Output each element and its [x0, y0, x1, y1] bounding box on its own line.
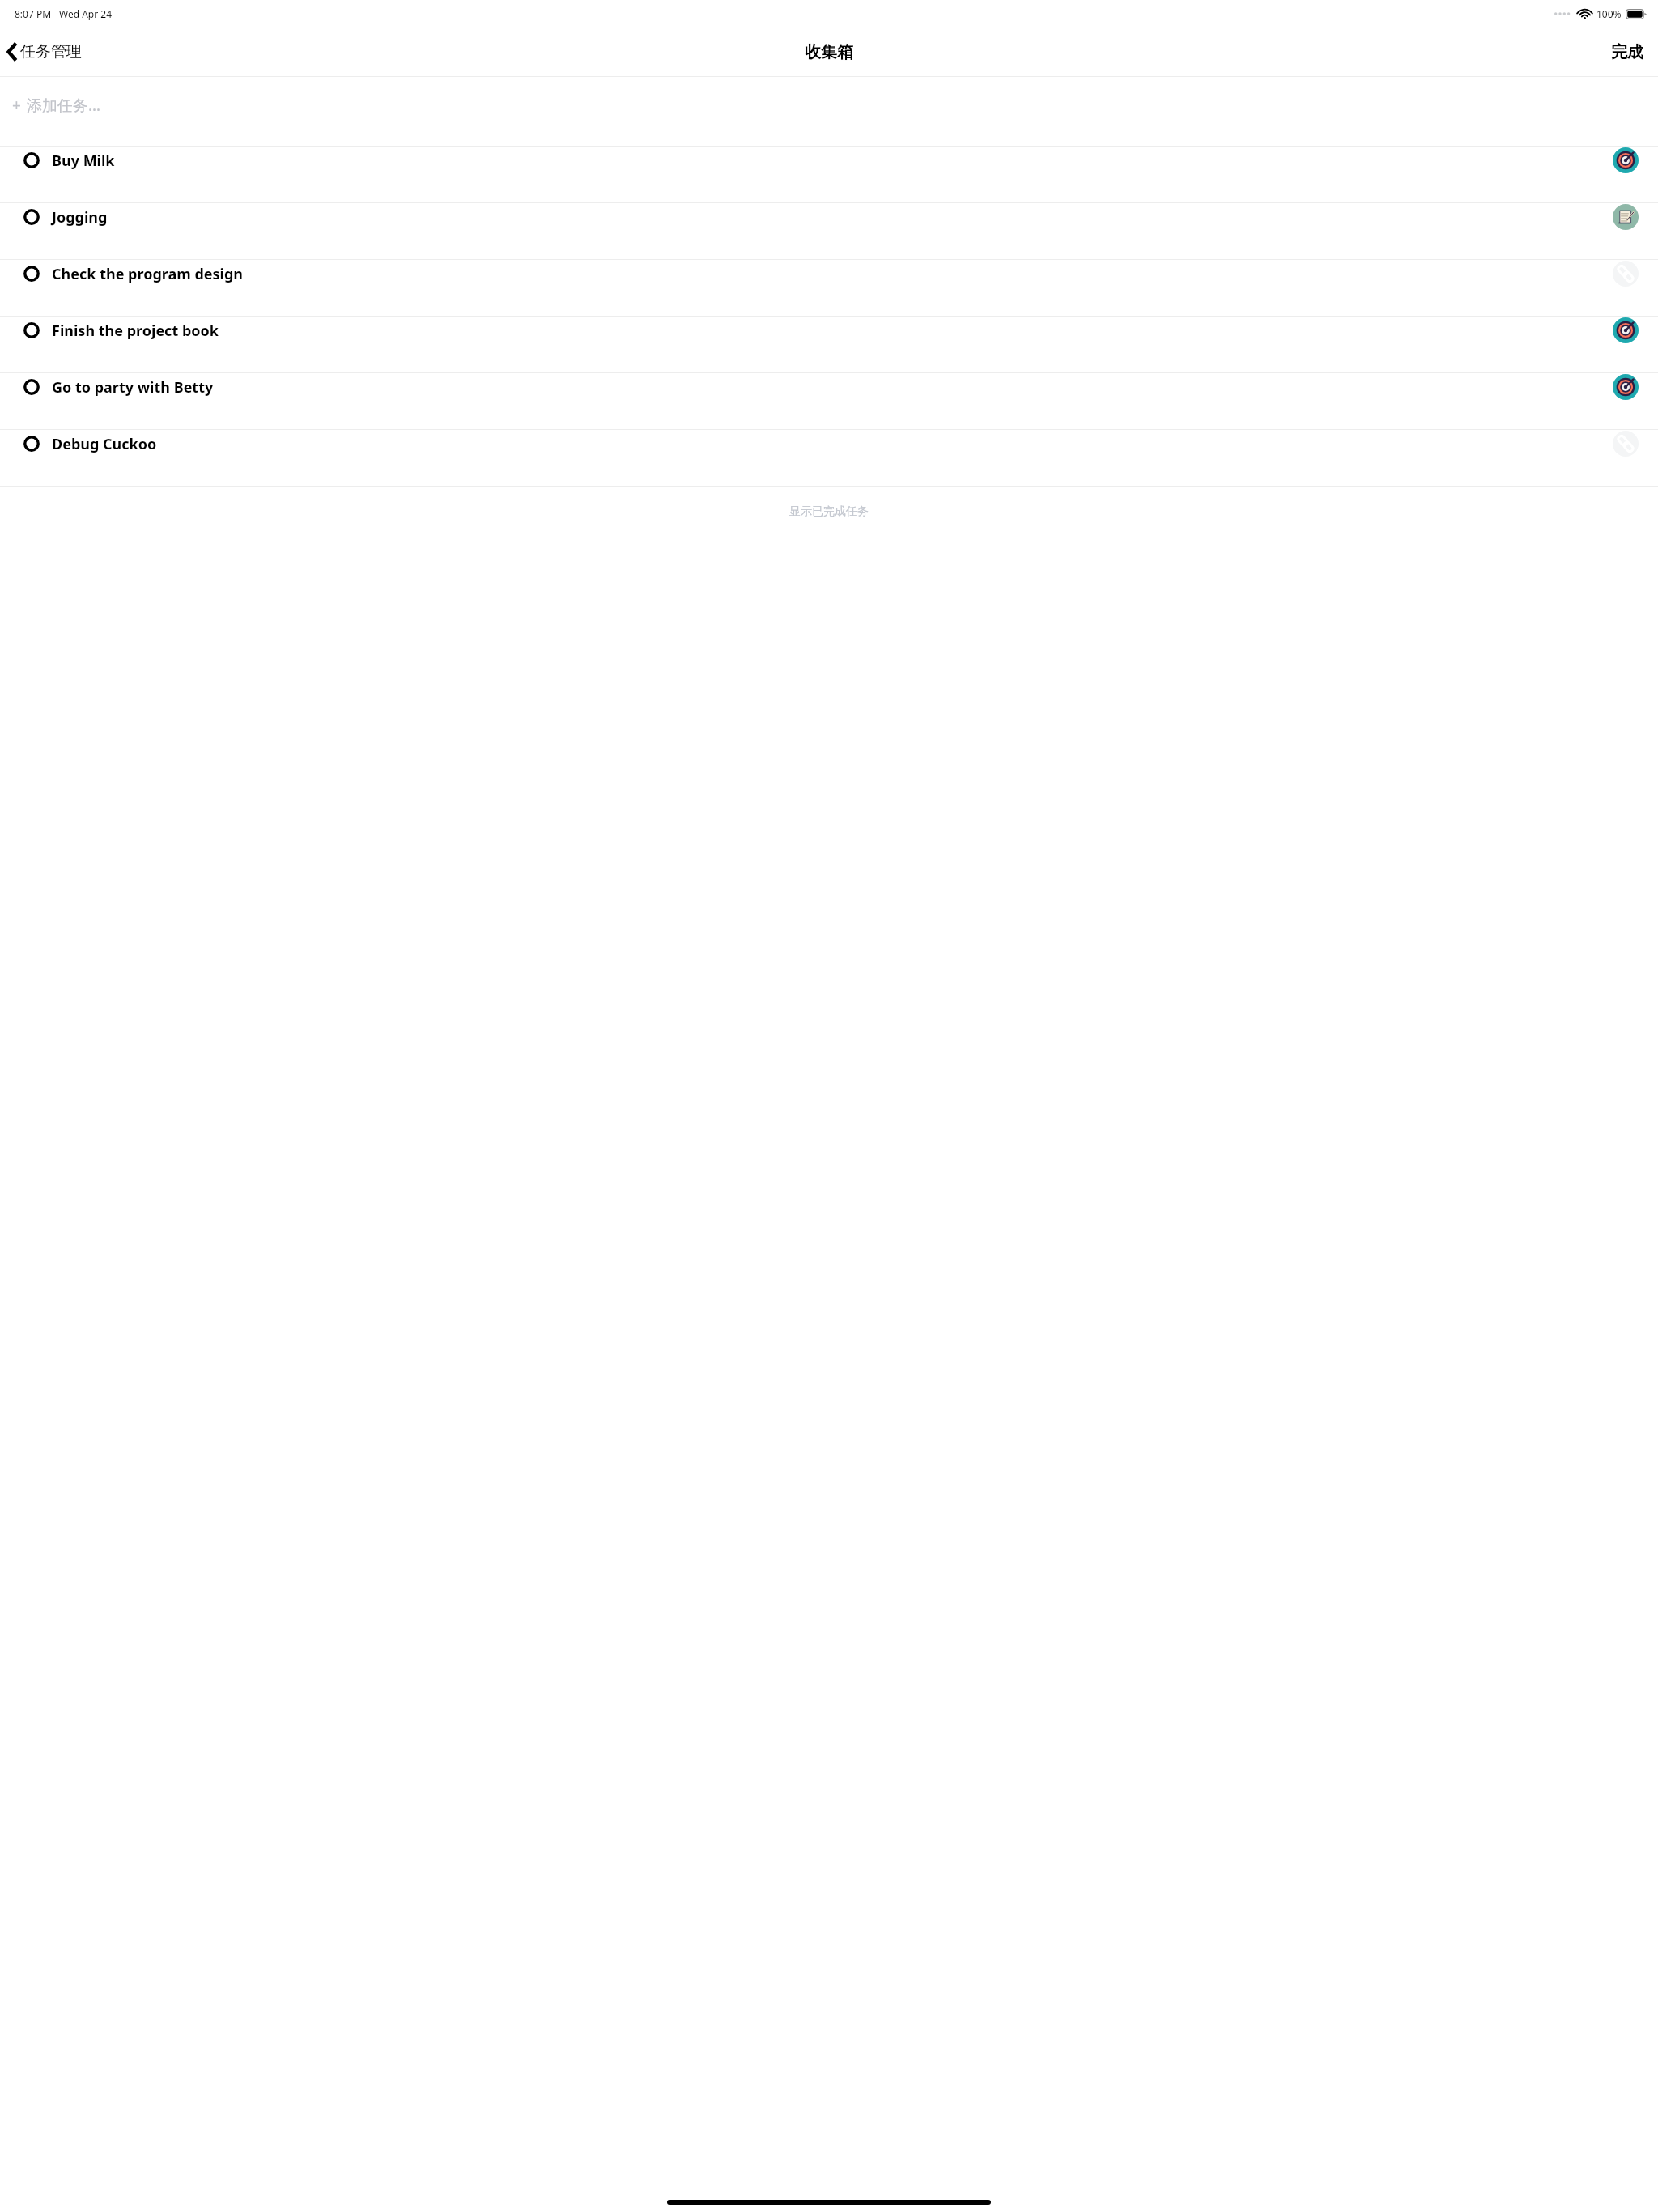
button[interactable]: Toggle complete: [0, 203, 1658, 259]
button[interactable]: +: [0, 77, 1658, 134]
button[interactable]: Toggle complete: [18, 147, 45, 174]
button[interactable]: Toggle complete: [0, 260, 1658, 316]
button[interactable]: Toggle complete: [18, 430, 45, 457]
button[interactable]: Toggle complete: [18, 317, 45, 344]
button[interactable]: Task tag: [1613, 431, 1639, 457]
button[interactable]: Toggle complete: [0, 373, 1658, 429]
staticText: Debug Cuckoo: [52, 434, 157, 454]
button[interactable]: Toggle complete: [0, 147, 1658, 202]
staticText: +: [12, 95, 21, 116]
staticText: 添加任务…: [27, 95, 101, 116]
button[interactable]: Task tag: [1613, 374, 1639, 400]
staticText: 100%: [1596, 7, 1622, 20]
button[interactable]: Task tag: [1613, 261, 1639, 287]
staticText: Wed Apr 24: [59, 7, 113, 20]
staticText: 8:07 PM: [15, 7, 52, 20]
staticText: Jogging: [52, 207, 108, 228]
button[interactable]: Task tag: [1613, 317, 1639, 343]
button[interactable]: Task tag: [1613, 204, 1639, 230]
staticText: 显示已完成任务: [789, 504, 869, 519]
staticText: 收集箱: [805, 42, 853, 62]
button[interactable]: Toggle complete: [0, 430, 1658, 486]
staticText: Finish the project book: [52, 321, 219, 341]
button[interactable]: Toggle complete: [18, 260, 45, 287]
staticText: 任务管理: [20, 42, 82, 62]
staticText: Buy Milk: [52, 151, 115, 171]
staticText: 完成: [1611, 42, 1643, 62]
staticText: Check the program design: [52, 264, 244, 284]
button[interactable]: 任务管理: [0, 37, 91, 66]
button[interactable]: Toggle complete: [0, 317, 1658, 372]
staticText: Go to party with Betty: [52, 377, 214, 398]
button[interactable]: 完成: [1596, 36, 1658, 69]
button[interactable]: 显示已完成任务: [0, 487, 1658, 537]
button[interactable]: Toggle complete: [18, 373, 45, 401]
button[interactable]: Task tag: [1613, 147, 1639, 173]
button[interactable]: Toggle complete: [18, 203, 45, 231]
